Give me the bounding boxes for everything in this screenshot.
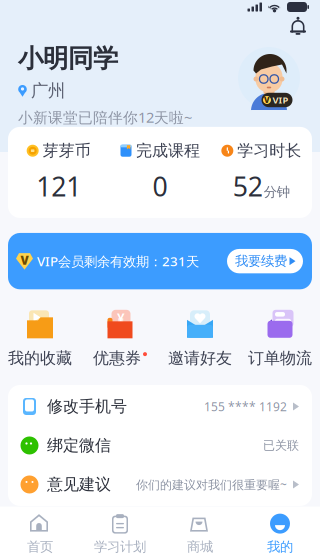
staticText: 小明同学	[18, 43, 118, 74]
staticText: 0	[152, 168, 167, 204]
staticText: 芽芽币	[43, 141, 91, 161]
staticText: 155 **** 1192	[204, 398, 287, 414]
staticText: 小新课堂已陪伴你12天啦~	[18, 107, 192, 127]
staticText: 意见建议	[47, 475, 111, 494]
staticText: 修改手机号	[47, 397, 127, 416]
staticText: 优惠券	[93, 348, 141, 368]
button[interactable]: 订单物流	[240, 309, 320, 368]
staticText: 邀请好友	[168, 348, 232, 368]
staticText: VIP	[272, 94, 288, 106]
staticText: 121	[36, 168, 81, 204]
button[interactable]: 绑定微信	[8, 426, 312, 465]
staticText: 我的收藏	[8, 348, 72, 368]
staticText: 绑定微信	[47, 436, 111, 455]
button[interactable]: 邀请好友	[160, 309, 240, 368]
button[interactable]: 意见建议	[8, 465, 312, 504]
staticText: 学习计划	[94, 539, 146, 555]
staticText: 商城	[187, 539, 213, 555]
button[interactable]: ¥	[80, 309, 160, 368]
staticText: 广州	[31, 80, 65, 101]
staticText: 首页	[27, 539, 53, 555]
button[interactable]: 我的	[240, 513, 320, 555]
staticText: 我要续费	[235, 253, 287, 269]
staticText: 学习时长	[237, 141, 301, 161]
staticText: 订单物流	[248, 348, 312, 368]
button[interactable]: 我的收藏	[0, 309, 80, 368]
staticText: ¥	[117, 309, 125, 327]
button[interactable]: 商城	[160, 513, 240, 555]
staticText: 你们的建议对我们很重要喔~	[136, 476, 287, 492]
staticText: 52	[233, 168, 263, 204]
staticText: 完成课程	[136, 141, 200, 161]
staticText: VIP会员剩余有效期：231天	[37, 252, 199, 270]
staticText: 分钟	[264, 184, 290, 200]
button[interactable]: 首页	[0, 513, 80, 555]
staticText: 我的	[267, 539, 293, 555]
staticText: V	[264, 95, 270, 105]
button[interactable]: Notifications	[289, 17, 307, 36]
button[interactable]: 我要续费	[227, 249, 303, 273]
button[interactable]: 学习计划	[80, 513, 160, 555]
button[interactable]: 修改手机号	[8, 387, 312, 426]
staticText: V	[20, 252, 28, 268]
staticText: 已关联	[263, 438, 299, 453]
